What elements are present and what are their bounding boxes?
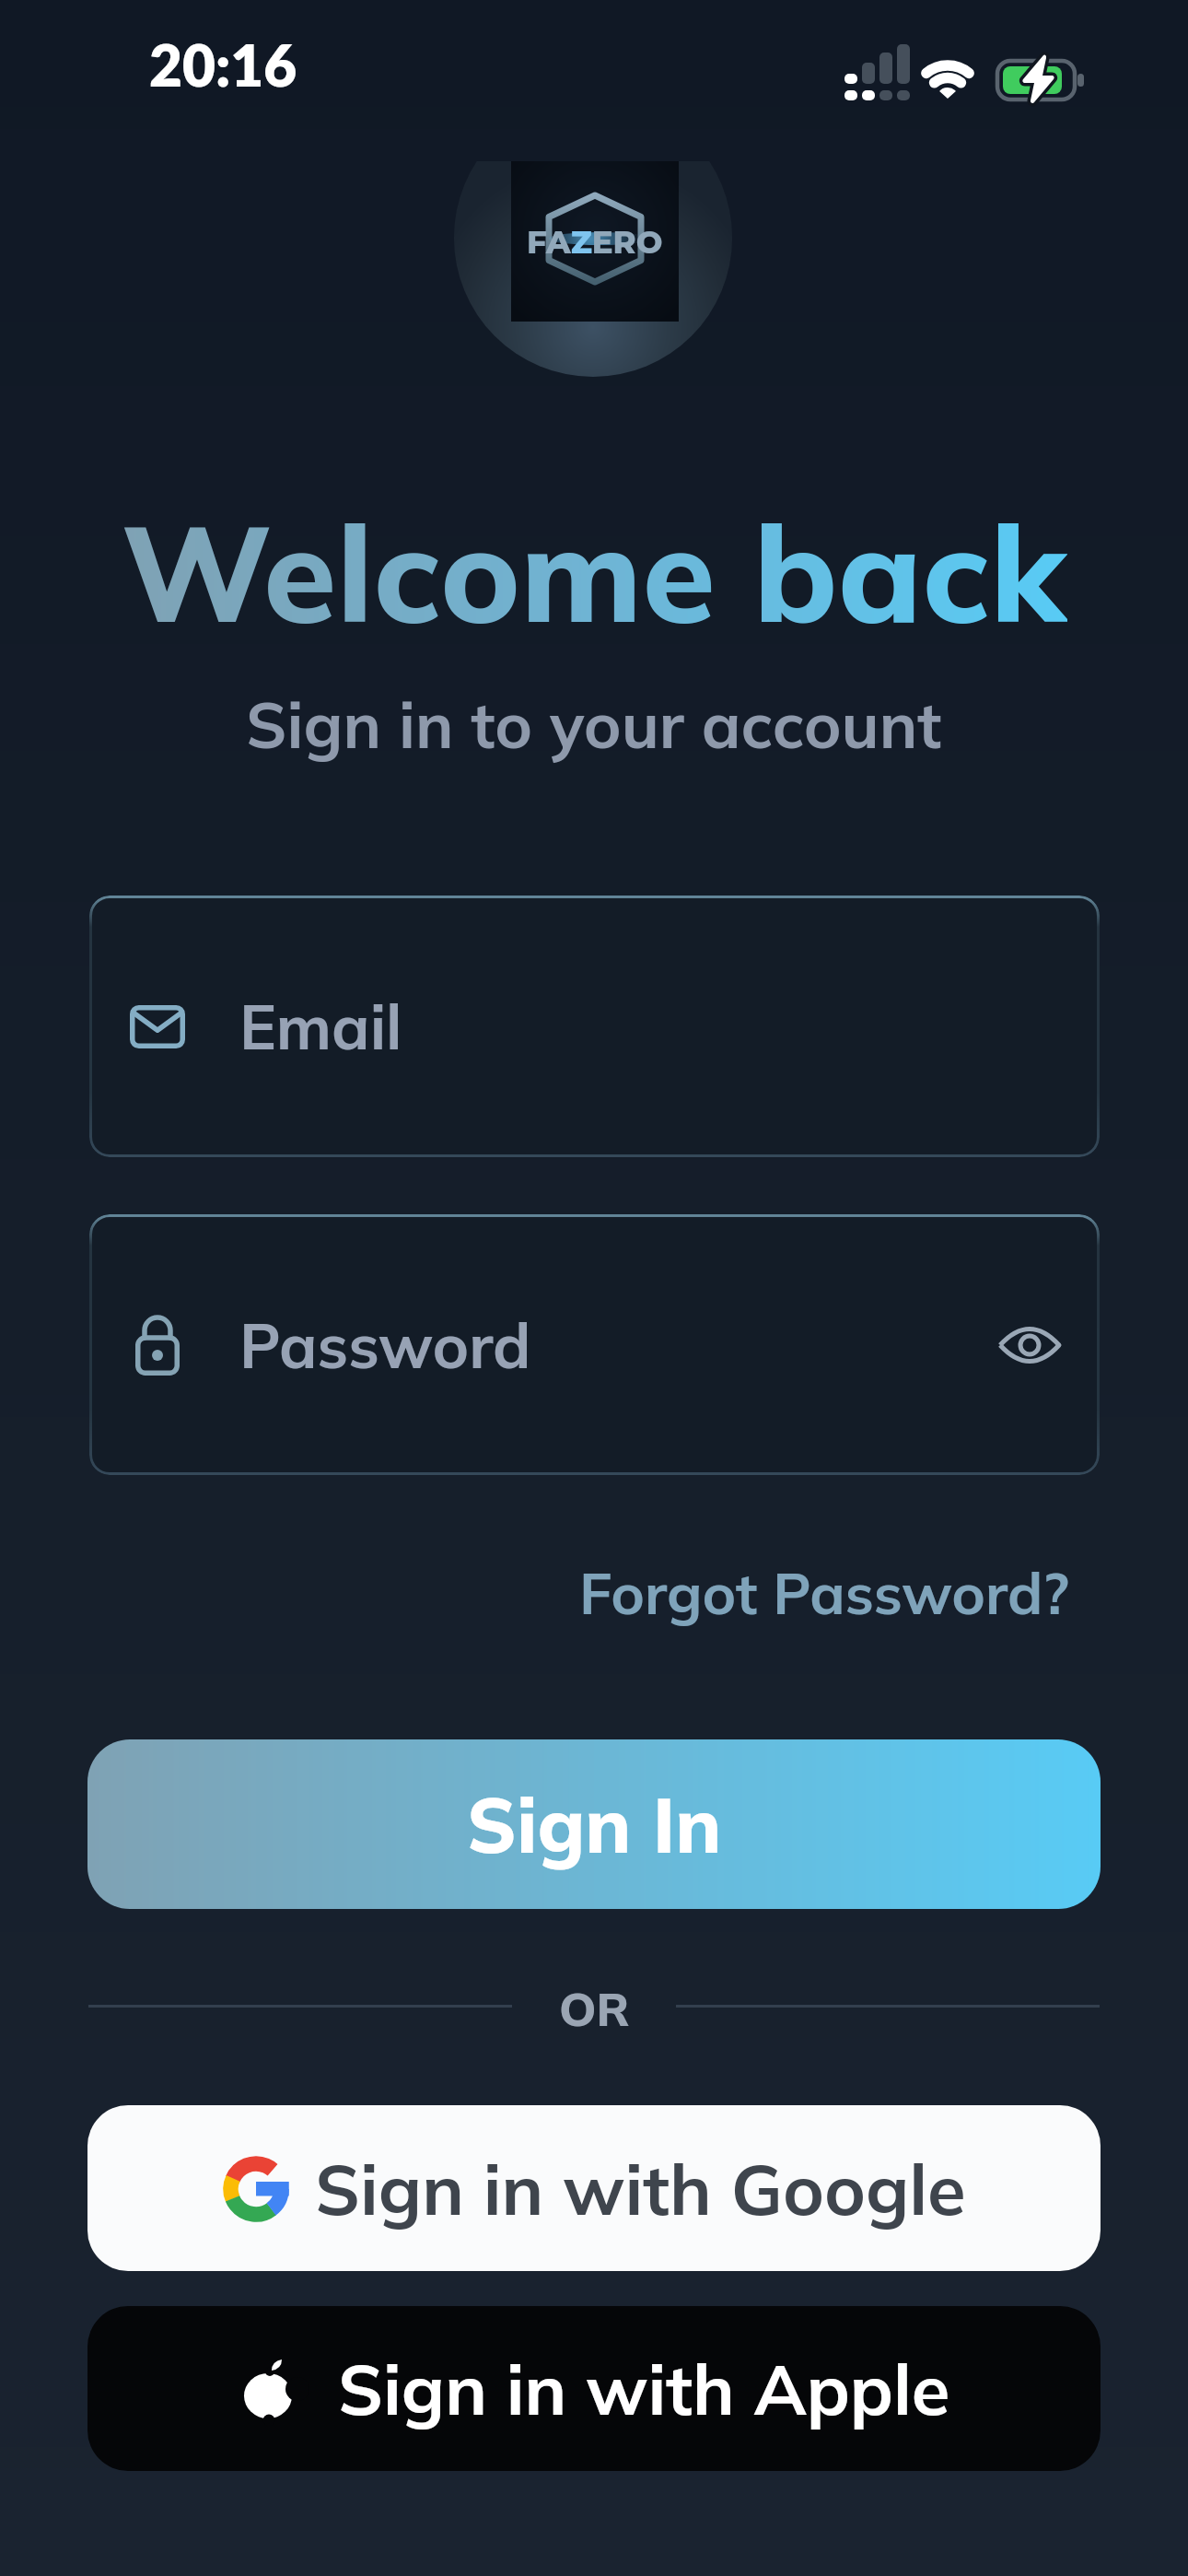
staticText: 20:16 xyxy=(149,30,297,99)
button[interactable]: Forgot Password? xyxy=(579,1557,1070,1629)
staticText: Sign in with Google xyxy=(315,2145,966,2232)
button[interactable] xyxy=(999,1324,1060,1366)
staticText: OR xyxy=(559,1979,630,2034)
button[interactable]: Sign in with Google xyxy=(87,2105,1101,2271)
staticText: Password xyxy=(239,1306,531,1384)
button[interactable]: Sign In xyxy=(87,1739,1101,1909)
button[interactable]: Email xyxy=(89,896,1100,1157)
staticText: Welcome back xyxy=(122,487,1067,635)
staticText: Sign In xyxy=(467,1777,722,1872)
staticText: Sign in to your account xyxy=(246,685,942,765)
button[interactable]: Password xyxy=(89,1214,1100,1475)
staticText: FAZERO xyxy=(527,223,663,261)
button[interactable]: Sign in with Apple xyxy=(87,2306,1101,2471)
staticText: Email xyxy=(239,988,402,1065)
staticText: Sign in with Apple xyxy=(338,2345,950,2432)
